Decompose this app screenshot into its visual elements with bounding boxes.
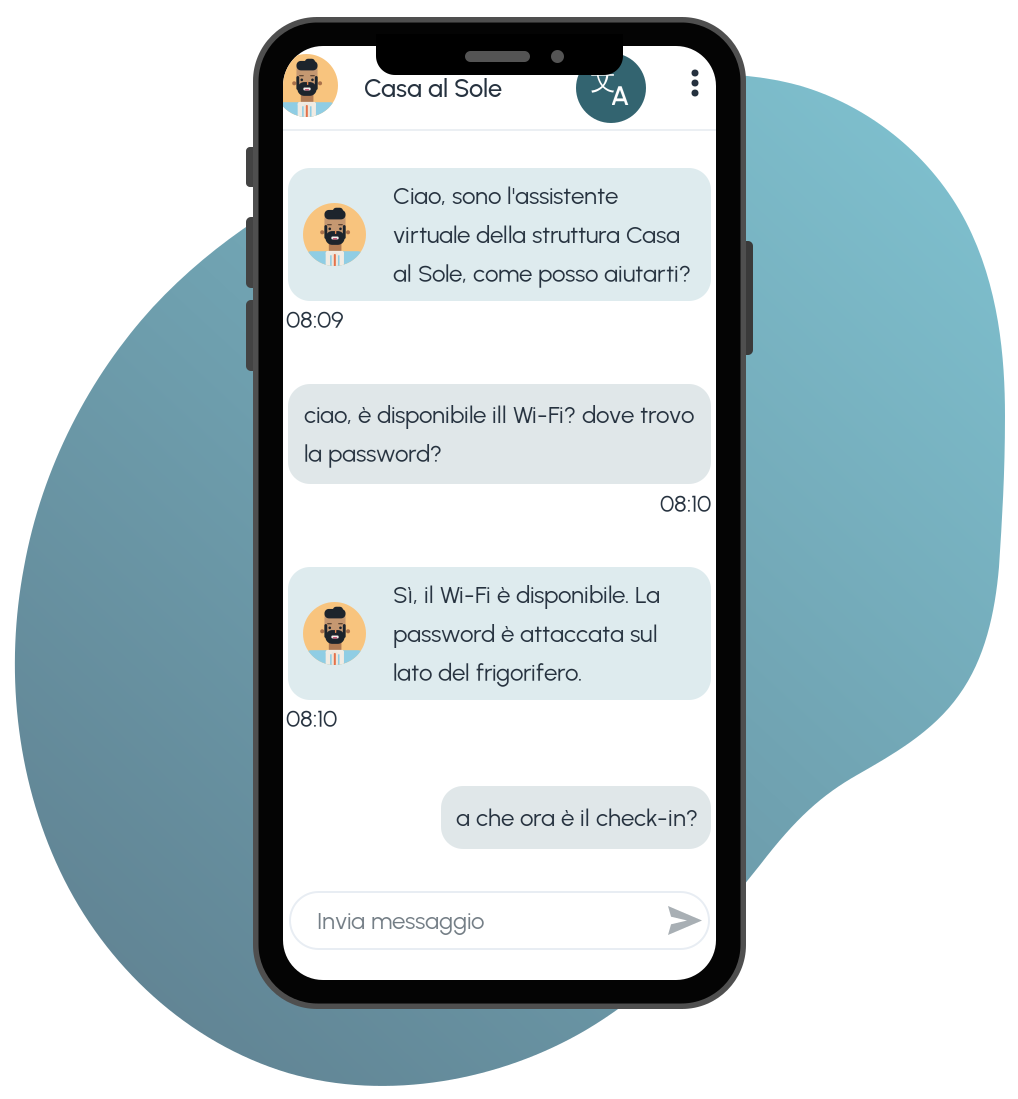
button[interactable]: Profile picture (275, 54, 338, 117)
button[interactable]: Invia messaggio (290, 892, 709, 949)
staticText: A (610, 80, 629, 112)
staticText: Sì, il Wi-Fi è disponibile. La password … (393, 580, 660, 687)
staticText: 文 (590, 65, 615, 96)
staticText: Casa al Sole (364, 73, 502, 103)
staticText: 08:10 (286, 704, 337, 733)
staticText: Ciao, sono l'assistente virtuale della s… (393, 181, 691, 288)
staticText: 08:10 (660, 489, 711, 518)
staticText: a che ora è il check-in? (456, 803, 698, 832)
staticText: Invia messaggio (317, 906, 484, 935)
button[interactable]: More options (673, 52, 717, 114)
staticText: ciao, è disponibile ill Wi-Fi? dove trov… (304, 400, 694, 468)
staticText: 08:09 (286, 305, 344, 334)
button[interactable]: Translate (576, 53, 646, 123)
